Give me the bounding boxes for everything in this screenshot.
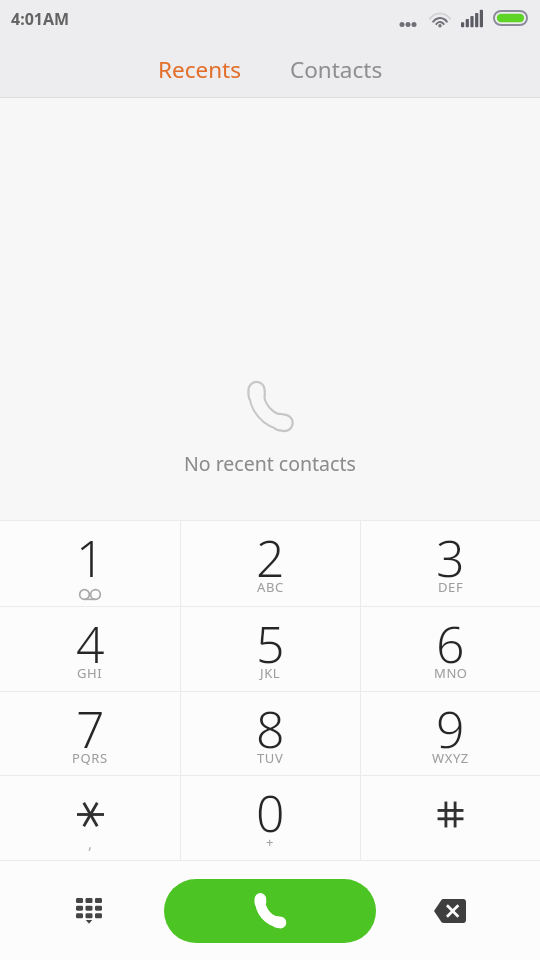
staticText: + [266, 833, 275, 851]
staticText: JKL [260, 664, 281, 682]
button[interactable]: 6 [361, 607, 540, 691]
staticText: DEF [438, 578, 464, 596]
button[interactable]: Contacts [276, 40, 397, 98]
staticText: 7 [76, 695, 105, 763]
staticText: 0 [256, 779, 285, 847]
staticText: TUV [257, 749, 284, 767]
button[interactable]: 3 [361, 521, 540, 606]
staticText: WXYZ [432, 749, 469, 767]
staticText: 9 [436, 695, 465, 763]
staticText: 8 [256, 695, 285, 763]
staticText: 5 [256, 610, 285, 678]
button[interactable]: 9 [361, 692, 540, 775]
staticText: Recents [158, 54, 241, 85]
button[interactable]: 7 [0, 692, 180, 775]
staticText: 4 [76, 610, 105, 678]
button[interactable]: 4 [0, 607, 180, 691]
staticText: GHI [77, 664, 103, 682]
staticText: 4:01AM [11, 8, 70, 30]
staticText: 2 [256, 524, 285, 592]
staticText: MNO [434, 664, 468, 682]
button[interactable]: Call [164, 879, 376, 943]
button[interactable]: 0 [181, 776, 360, 860]
staticText: 6 [436, 610, 465, 678]
button[interactable]: Backspace [426, 887, 474, 935]
staticText: 1 [76, 524, 105, 592]
button[interactable]: 5 [181, 607, 360, 691]
staticText: Contacts [290, 54, 383, 85]
button[interactable]: Recents [144, 40, 255, 98]
button[interactable]: 8 [181, 692, 360, 775]
staticText: 3 [436, 524, 465, 592]
button[interactable] [361, 776, 540, 860]
button[interactable]: Hide dialpad [65, 887, 113, 935]
staticText: ABC [257, 578, 284, 596]
button[interactable]: 1 [0, 521, 180, 606]
staticText: , [88, 833, 93, 853]
button[interactable]: , [0, 776, 180, 860]
staticText: No recent contacts [184, 450, 356, 477]
button[interactable]: 2 [181, 521, 360, 606]
staticText: PQRS [72, 749, 108, 767]
